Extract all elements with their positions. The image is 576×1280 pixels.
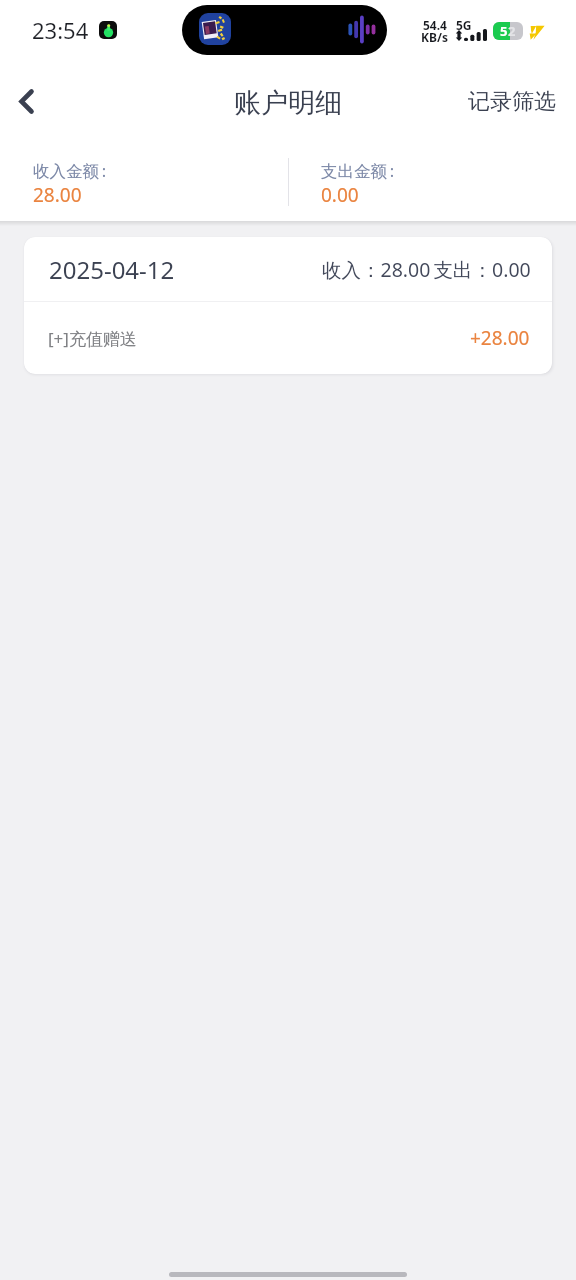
staticText: 2	[508, 22, 516, 40]
button[interactable]: Back	[2, 60, 50, 143]
staticText: [+]充值赠送	[48, 327, 137, 350]
staticText: 5	[500, 22, 508, 40]
staticText: 支出金额 :	[321, 159, 395, 182]
staticText: KB/s	[421, 29, 448, 45]
staticText: 28.00	[33, 182, 82, 208]
staticText: 账户明细	[234, 86, 342, 120]
staticText: 5G	[456, 17, 472, 33]
staticText: 23:54	[32, 15, 89, 45]
staticText: 54.4	[423, 17, 447, 33]
staticText: 收入金额 :	[33, 159, 107, 182]
staticText: 记录筛选	[468, 88, 556, 116]
staticText: 2025-04-12	[49, 253, 175, 286]
staticText: 0.00	[321, 182, 359, 208]
button[interactable]: 2025-04-12	[24, 237, 552, 374]
staticText: 收入：28.00 支出：0.00	[322, 256, 531, 283]
staticText: +28.00	[470, 325, 530, 351]
button[interactable]: 记录筛选	[448, 74, 576, 130]
